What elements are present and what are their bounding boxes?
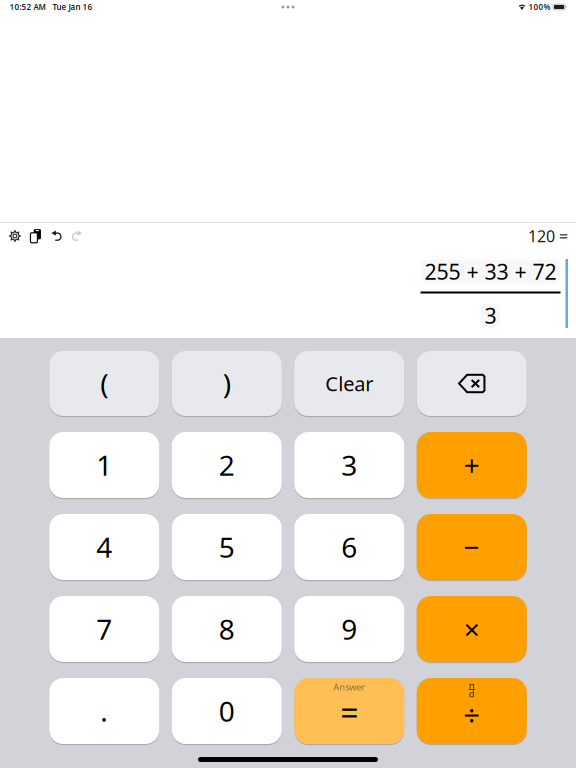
button[interactable]: 4 (49, 514, 159, 580)
button[interactable]: Close parenthesis (172, 351, 282, 416)
staticText: + (464, 446, 480, 484)
staticText: 5 (219, 528, 235, 566)
staticText: 4 (96, 528, 112, 566)
button[interactable]: × (417, 596, 527, 662)
staticText: 3 (484, 301, 496, 330)
staticText: − (464, 528, 480, 566)
staticText: d (469, 688, 475, 700)
button[interactable]: Undo (46, 223, 67, 249)
staticText: ) (223, 365, 231, 402)
button[interactable]: Clear (294, 351, 404, 416)
button[interactable]: 3 (294, 432, 404, 498)
staticText: 0 (219, 692, 235, 730)
staticText: 10:52 AM (9, 2, 45, 12)
button[interactable]: 1 (49, 432, 159, 498)
staticText: ÷ (463, 695, 480, 734)
button[interactable]: 9 (294, 596, 404, 662)
button[interactable]: Settings (5, 223, 25, 249)
button[interactable]: Open parenthesis (49, 351, 159, 416)
staticText: 9 (341, 610, 357, 648)
button[interactable]: 8 (172, 596, 282, 662)
button[interactable]: Delete (417, 351, 527, 416)
staticText: 2 (219, 446, 235, 484)
staticText: 8 (219, 610, 235, 648)
staticText: n (469, 679, 475, 691)
staticText: 6 (341, 528, 357, 566)
button[interactable]: Divide (417, 678, 527, 744)
staticText: 3 (341, 446, 357, 484)
staticText: Tue Jan 16 (52, 2, 92, 12)
button[interactable]: 5 (172, 514, 282, 580)
button[interactable]: Copy (25, 223, 46, 249)
staticText: Answer (333, 681, 365, 693)
staticText: 255 + 33 + 72 (424, 257, 556, 286)
staticText: ( (100, 365, 108, 402)
staticText: × (464, 610, 480, 648)
button[interactable]: − (417, 514, 527, 580)
staticText: 100% (528, 2, 550, 12)
staticText: = (340, 691, 358, 733)
button[interactable]: 6 (294, 514, 404, 580)
staticText: 120 = (528, 225, 568, 247)
button[interactable]: 0 (172, 678, 282, 744)
button[interactable]: + (417, 432, 527, 498)
staticText: Clear (325, 370, 373, 397)
button[interactable]: Answer (294, 678, 404, 744)
button[interactable]: 7 (49, 596, 159, 662)
button[interactable]: 2 (172, 432, 282, 498)
staticText: . (100, 692, 108, 730)
staticText: 7 (96, 610, 112, 648)
button[interactable]: Decimal point (49, 678, 159, 744)
button[interactable]: Redo (67, 223, 87, 249)
staticText: 1 (96, 446, 112, 484)
